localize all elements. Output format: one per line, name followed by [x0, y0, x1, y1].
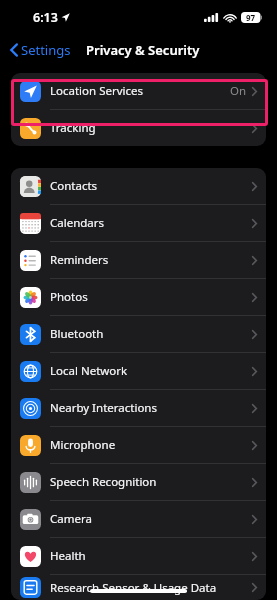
button[interactable]: Contacts — [11, 168, 266, 205]
button[interactable]: Tracking — [11, 110, 266, 146]
staticText: 6:13 — [33, 9, 58, 26]
staticText: Location Services — [50, 83, 143, 99]
button[interactable]: Camera — [11, 501, 266, 538]
staticText: On — [230, 83, 247, 99]
button[interactable]: Health — [11, 538, 266, 575]
button[interactable]: Photos — [11, 279, 266, 316]
staticText: 97 — [246, 12, 256, 23]
staticText: Bluetooth — [50, 326, 104, 342]
button[interactable]: Nearby Interactions — [11, 390, 266, 427]
button[interactable]: Research Sensor & Usage Data — [11, 575, 266, 600]
staticText: Microphone — [50, 437, 116, 453]
button[interactable]: Location Services — [11, 73, 266, 110]
staticText: Nearby Interactions — [50, 400, 157, 416]
staticText: Health — [50, 548, 86, 564]
staticText: Calendars — [50, 215, 105, 231]
staticText: Contacts — [50, 178, 98, 194]
staticText: Privacy & Security — [86, 41, 200, 59]
button[interactable]: Microphone — [11, 427, 266, 464]
staticText: Reminders — [50, 252, 109, 268]
button[interactable]: Bluetooth — [11, 316, 266, 353]
button[interactable]: Local Network — [11, 353, 266, 390]
staticText: Research Sensor & Usage Data — [50, 580, 217, 596]
button[interactable]: Calendars — [11, 205, 266, 242]
staticText: Settings — [21, 41, 71, 59]
staticText: Local Network — [50, 363, 128, 379]
button[interactable]: Speech Recognition — [11, 464, 266, 501]
staticText: Photos — [50, 289, 88, 305]
staticText: Camera — [50, 511, 92, 527]
button[interactable]: Reminders — [11, 242, 266, 279]
staticText: Speech Recognition — [50, 474, 157, 490]
staticText: Tracking — [50, 120, 96, 136]
button[interactable]: Settings — [8, 37, 73, 63]
